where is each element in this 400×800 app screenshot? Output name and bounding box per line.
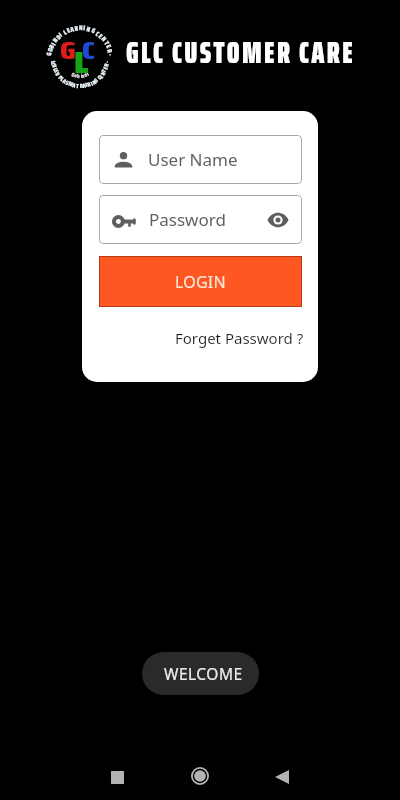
staticText: WELCOME: [164, 663, 243, 684]
staticText: GLC CUSTOMER CARE: [126, 28, 356, 77]
button[interactable]: Forget Password ?: [175, 328, 304, 348]
staticText: LOGIN: [175, 271, 226, 293]
button[interactable]: WELCOME: [142, 652, 259, 695]
button[interactable]: Show password: [261, 203, 295, 237]
button[interactable]: Recent apps: [105, 765, 129, 789]
staticText: User Name: [148, 148, 238, 171]
button[interactable]: User Name: [99, 135, 302, 184]
button[interactable]: LOGIN: [99, 256, 302, 307]
other: GLC logo: [42, 21, 118, 97]
button[interactable]: Password: [99, 195, 302, 244]
staticText: Password: [149, 208, 226, 231]
button[interactable]: Home: [186, 762, 214, 790]
button[interactable]: Back: [270, 765, 294, 789]
